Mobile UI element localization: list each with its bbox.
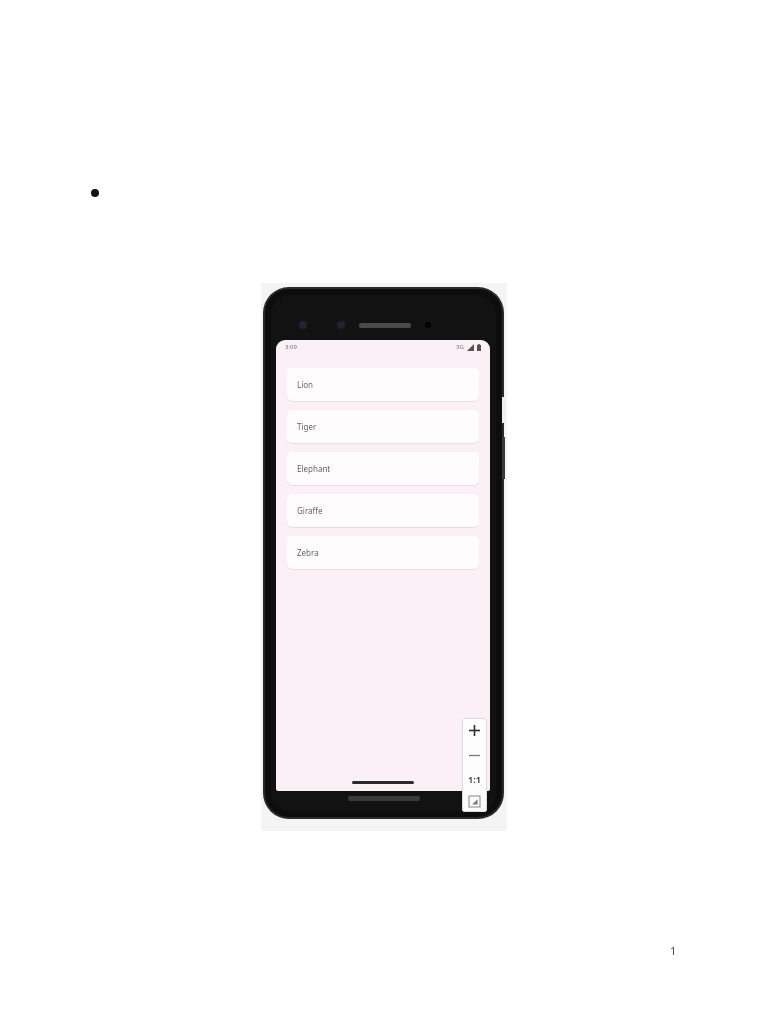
button[interactable]: Zoom out (462, 743, 487, 767)
button[interactable]: Zebra (287, 536, 479, 569)
button[interactable]: Fit to screen (462, 790, 487, 812)
button[interactable]: Lion (287, 368, 479, 401)
staticText: 3G (456, 343, 464, 351)
staticText: Elephant (297, 463, 331, 474)
staticText: Tiger (297, 421, 317, 432)
staticText: 1:1 (468, 773, 481, 785)
button[interactable]: Tiger (287, 410, 479, 443)
button[interactable]: Giraffe (287, 494, 479, 527)
staticText: 3:09 (285, 343, 297, 351)
staticText: Lion (297, 379, 314, 390)
button[interactable]: 1:1 (462, 767, 487, 790)
staticText: Giraffe (297, 505, 323, 516)
staticText: 1 (670, 943, 677, 958)
button[interactable]: Elephant (287, 452, 479, 485)
button[interactable]: Zoom in (462, 718, 487, 743)
staticText: Zebra (297, 547, 319, 558)
